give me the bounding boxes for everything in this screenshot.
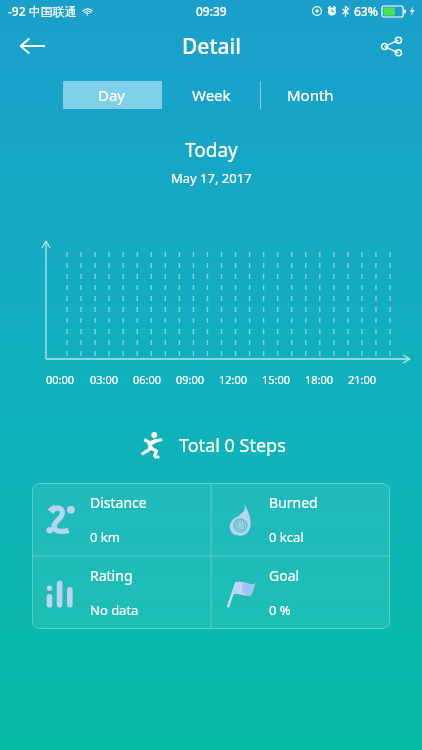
button[interactable]: Week xyxy=(162,81,260,109)
staticText: 06:00 xyxy=(133,372,162,387)
staticText: Month xyxy=(287,85,334,105)
button[interactable]: Distance xyxy=(32,483,211,556)
button[interactable]: Day xyxy=(63,81,161,109)
button[interactable]: Back xyxy=(8,22,56,70)
button[interactable]: Share xyxy=(368,23,414,69)
staticText: Burned xyxy=(269,493,318,512)
staticText: Total 0 Steps xyxy=(179,433,286,458)
button[interactable]: Rating xyxy=(32,556,211,629)
button[interactable]: Burned xyxy=(211,483,390,556)
staticText: May 17, 2017 xyxy=(171,169,252,187)
staticText: -92 中国联通 xyxy=(8,3,77,19)
staticText: Goal xyxy=(269,566,300,585)
staticText: 63% xyxy=(354,3,378,19)
staticText: 21:00 xyxy=(348,372,377,387)
staticText: Week xyxy=(192,85,231,105)
staticText: 09:39 xyxy=(196,3,227,19)
staticText: 03:00 xyxy=(90,372,119,387)
staticText: 0 % xyxy=(269,601,291,619)
staticText: Detail xyxy=(182,32,241,61)
staticText: Day xyxy=(98,85,126,105)
staticText: 12:00 xyxy=(219,372,248,387)
button[interactable]: Month xyxy=(261,81,359,109)
staticText: 09:00 xyxy=(176,372,205,387)
staticText: 0 kcal xyxy=(269,528,304,546)
button[interactable]: Goal xyxy=(211,556,390,629)
staticText: Today xyxy=(185,137,238,163)
staticText: 00:00 xyxy=(46,372,75,387)
staticText: 18:00 xyxy=(305,372,334,387)
staticText: No data xyxy=(90,601,139,619)
staticText: Distance xyxy=(90,493,147,512)
staticText: 0 km xyxy=(90,528,120,546)
staticText: Rating xyxy=(90,566,133,585)
staticText: 15:00 xyxy=(262,372,291,387)
